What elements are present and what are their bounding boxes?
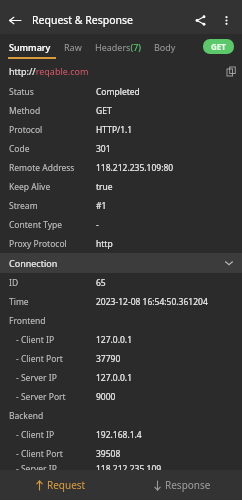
- staticText: HTTP/1.1: [96, 124, 133, 136]
- staticText: Status: [9, 86, 34, 98]
- staticText: Response: [165, 478, 211, 492]
- staticText: 65: [96, 277, 106, 289]
- staticText: Request & Response: [32, 13, 134, 27]
- staticText: Raw: [64, 41, 82, 53]
- button[interactable]: - Server IP: [0, 463, 242, 470]
- button[interactable]: Proxy Protocol: [0, 234, 242, 253]
- staticText: - Server IP: [16, 463, 57, 470]
- staticText: Time: [9, 296, 29, 308]
- button[interactable]: Raw: [64, 41, 82, 53]
- staticText: Headers(7): [95, 41, 141, 53]
- staticText: ID: [9, 277, 19, 289]
- button[interactable]: Request: [0, 470, 121, 500]
- staticText: 127.0.0.1: [96, 372, 133, 384]
- button[interactable]: - Client Port: [0, 444, 242, 463]
- staticText: 37790: [96, 353, 121, 365]
- staticText: Summary: [9, 41, 51, 53]
- button[interactable]: Copy URL: [220, 60, 242, 82]
- button[interactable]: Stream: [0, 196, 242, 215]
- button[interactable]: Back: [0, 6, 28, 34]
- button[interactable]: GET: [203, 39, 234, 54]
- staticText: - Client IP: [16, 334, 55, 346]
- staticText: Stream: [9, 200, 38, 212]
- button[interactable]: Protocol: [0, 120, 242, 139]
- button[interactable]: - Server Port: [0, 387, 242, 406]
- staticText: http://reqable.com: [9, 65, 89, 77]
- staticText: Method: [9, 105, 41, 117]
- button[interactable]: Code: [0, 139, 242, 158]
- staticText: Backend: [9, 410, 44, 422]
- staticText: - Client Port: [16, 353, 63, 365]
- staticText: - Server IP: [16, 372, 57, 384]
- staticText: Frontend: [9, 315, 46, 327]
- staticText: Proxy Protocol: [9, 238, 67, 250]
- staticText: #1: [96, 200, 107, 212]
- button[interactable]: - Client IP: [0, 330, 242, 349]
- staticText: 2023-12-08 16:54:50.361204: [96, 296, 208, 308]
- staticText: Request: [47, 478, 86, 492]
- staticText: GET: [211, 41, 226, 52]
- staticText: 39508: [96, 448, 121, 460]
- staticText: Content Type: [9, 219, 63, 231]
- staticText: GET: [96, 105, 112, 117]
- button[interactable]: Status: [0, 82, 242, 101]
- staticText: 9000: [96, 391, 116, 403]
- button[interactable]: - Client Port: [0, 349, 242, 368]
- button[interactable]: Summary: [9, 41, 51, 53]
- button[interactable]: Backend: [0, 406, 242, 425]
- button[interactable]: More options: [213, 7, 239, 33]
- button[interactable]: Response: [121, 470, 242, 500]
- staticText: Connection: [9, 257, 58, 269]
- staticText: http: [96, 238, 113, 250]
- staticText: -: [96, 219, 99, 231]
- button[interactable]: - Client IP: [0, 425, 242, 444]
- button[interactable]: - Server IP: [0, 368, 242, 387]
- staticText: 118.212.235.109:80: [96, 162, 174, 174]
- staticText: Keep Alive: [9, 181, 51, 193]
- button[interactable]: Frontend: [0, 311, 242, 330]
- staticText: 127.0.0.1: [96, 334, 133, 346]
- button[interactable]: Headers(7): [95, 41, 141, 53]
- staticText: - Client Port: [16, 448, 63, 460]
- staticText: 118.212.235.109: [96, 463, 162, 470]
- staticText: true: [96, 181, 113, 193]
- staticText: Body: [154, 41, 176, 53]
- staticText: - Server Port: [16, 391, 66, 403]
- staticText: Remote Address: [9, 162, 75, 174]
- button[interactable]: Time: [0, 292, 242, 311]
- button[interactable]: Body: [154, 41, 176, 53]
- button[interactable]: Keep Alive: [0, 177, 242, 196]
- staticText: 192.168.1.4: [96, 429, 142, 441]
- button[interactable]: Method: [0, 101, 242, 120]
- staticText: Code: [9, 143, 30, 155]
- button[interactable]: Remote Address: [0, 158, 242, 177]
- staticText: Protocol: [9, 124, 43, 136]
- button[interactable]: Share: [187, 7, 213, 33]
- button[interactable]: ID: [0, 273, 242, 292]
- button[interactable]: Content Type: [0, 215, 242, 234]
- staticText: - Client IP: [16, 429, 55, 441]
- button[interactable]: http://reqable.com: [0, 59, 242, 82]
- button[interactable]: Connection: [0, 253, 242, 273]
- staticText: Completed: [96, 86, 140, 98]
- staticText: 301: [96, 143, 111, 155]
